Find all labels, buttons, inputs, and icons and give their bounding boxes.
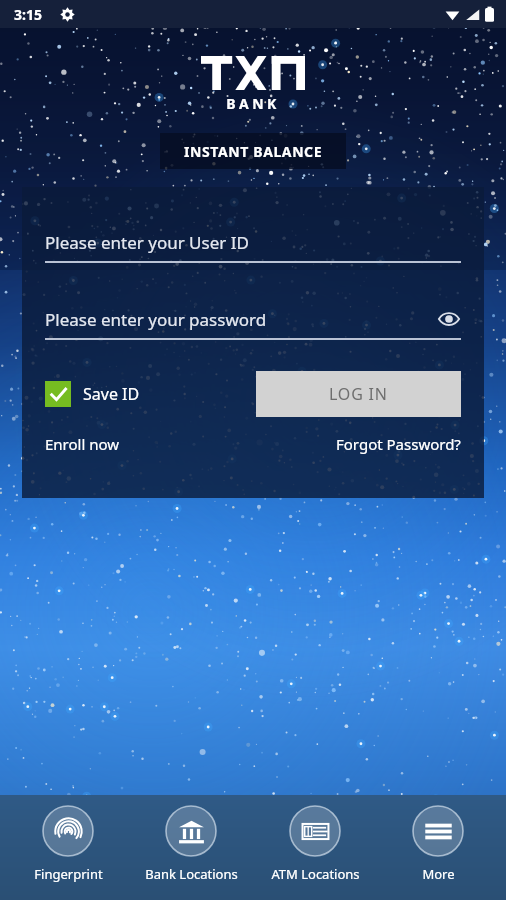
staticText: More (422, 865, 455, 883)
button[interactable]: More (383, 805, 493, 883)
button[interactable]: ATM Locations (260, 805, 370, 883)
button[interactable]: Please enter your password (45, 307, 461, 340)
button[interactable]: LOG IN (256, 371, 461, 417)
button[interactable]: Forgot Password? (336, 434, 461, 454)
button[interactable]: Show password (437, 307, 461, 331)
staticText: INSTANT BALANCE (184, 142, 323, 161)
staticText: Enroll now (45, 434, 120, 454)
button[interactable]: Bank Locations (136, 805, 246, 883)
staticText: LOG IN (329, 383, 388, 405)
button[interactable]: Save ID (45, 381, 140, 407)
button[interactable]: Fingerprint (13, 805, 123, 883)
staticText: Please enter your User ID (45, 231, 249, 254)
staticText: Fingerprint (34, 865, 103, 883)
staticText: Save ID (83, 383, 140, 405)
button[interactable]: Please enter your User ID (45, 231, 461, 263)
staticText: Please enter your password (45, 308, 267, 331)
staticText: Bank Locations (145, 865, 238, 883)
button[interactable]: INSTANT BALANCE (160, 133, 346, 169)
staticText: BANK (226, 94, 280, 113)
staticText: 3:15 (14, 5, 42, 24)
staticText: ATM Locations (271, 865, 360, 883)
button[interactable]: Enroll now (45, 434, 120, 454)
staticText: Forgot Password? (336, 434, 461, 454)
